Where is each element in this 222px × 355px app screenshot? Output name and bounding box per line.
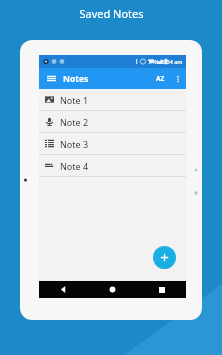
button[interactable]: Sort A to Z: [150, 68, 170, 89]
button[interactable]: Back: [39, 281, 88, 298]
button[interactable]: Recent apps: [137, 281, 186, 298]
staticText: Saved Notes: [79, 6, 144, 21]
button[interactable]: Note 3: [39, 133, 186, 155]
staticText: Notes: [63, 73, 89, 85]
staticText: Note 2: [60, 116, 89, 128]
button[interactable]: Note 4: [39, 155, 186, 177]
button[interactable]: Add note: [153, 246, 176, 269]
staticText: Note 4: [60, 160, 89, 172]
staticText: Note 3: [60, 138, 89, 150]
staticText: AZ: [156, 74, 165, 83]
staticText: Note 1: [60, 94, 89, 106]
button[interactable]: Open navigation menu: [39, 68, 63, 89]
button[interactable]: Note 1: [39, 89, 186, 111]
button[interactable]: Home: [88, 281, 137, 298]
button[interactable]: More options: [170, 68, 186, 89]
button[interactable]: Note 2: [39, 111, 186, 133]
staticText: 74% 8:34 am: [148, 58, 183, 65]
